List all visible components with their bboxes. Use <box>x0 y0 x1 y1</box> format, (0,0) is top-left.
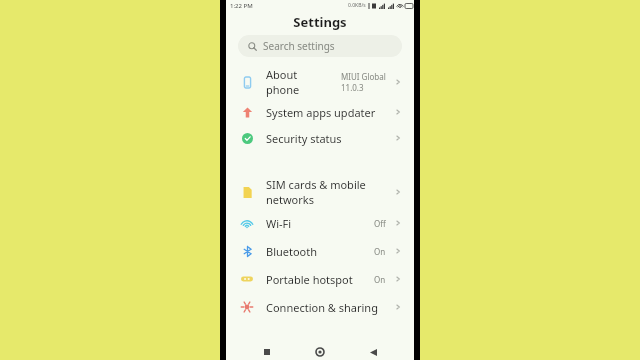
staticText: Connection & sharing <box>266 300 378 315</box>
staticText: 11.0.3 <box>341 82 364 93</box>
staticText: Off <box>374 218 386 229</box>
staticText: phone <box>266 82 300 97</box>
button[interactable]: Search settings <box>238 35 402 57</box>
staticText: Bluetooth <box>266 244 318 259</box>
button[interactable]: Back <box>361 344 385 360</box>
staticText: MIUI Global <box>341 71 386 82</box>
button[interactable]: Bluetooth <box>226 237 414 265</box>
button[interactable]: About <box>226 65 414 99</box>
button[interactable]: System apps updater <box>226 99 414 125</box>
button[interactable]: Security status <box>226 125 414 151</box>
staticText: 1:22 PM <box>230 2 253 10</box>
button[interactable]: Portable hotspot <box>226 265 414 293</box>
staticText: SIM cards & mobile <box>266 177 366 192</box>
staticText: Security status <box>266 131 342 146</box>
staticText: Wi-Fi <box>266 216 292 231</box>
staticText: On <box>374 246 386 257</box>
staticText: On <box>374 274 386 285</box>
button[interactable]: Recents <box>255 344 279 360</box>
staticText: Search settings <box>263 39 335 53</box>
staticText: 0.0KB/s <box>348 2 366 9</box>
staticText: About <box>266 67 298 82</box>
button[interactable]: Wi-Fi <box>226 209 414 237</box>
button[interactable]: Connection & sharing <box>226 293 414 321</box>
staticText: Settings <box>293 13 347 31</box>
staticText: Portable hotspot <box>266 272 353 287</box>
button[interactable]: SIM cards & mobile <box>226 175 414 209</box>
staticText: System apps updater <box>266 105 376 120</box>
button[interactable]: Home <box>308 344 332 360</box>
staticText: networks <box>266 192 314 207</box>
